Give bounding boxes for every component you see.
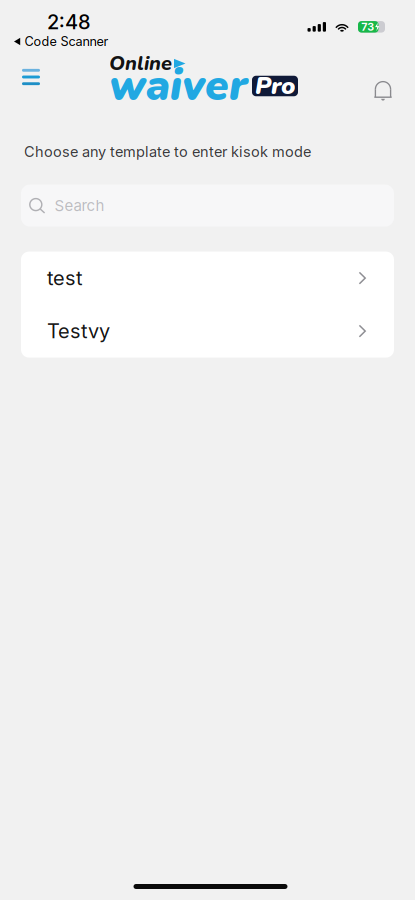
- staticText: test: [47, 266, 83, 290]
- staticText: Testvy: [47, 319, 110, 343]
- staticText: Choose any template to enter kisok mode: [24, 143, 311, 161]
- button[interactable]: test: [21, 252, 394, 305]
- staticText: waiver: [109, 57, 248, 115]
- button[interactable]: Notifications: [362, 70, 404, 112]
- staticText: 73: [361, 20, 374, 33]
- staticText: Online: [109, 50, 172, 77]
- staticText: 2:48: [47, 10, 91, 34]
- button[interactable]: Testvy: [21, 305, 394, 358]
- staticText: Code Scanner: [24, 34, 108, 49]
- staticText: Pro: [255, 70, 295, 102]
- button[interactable]: Menu: [10, 56, 52, 98]
- staticText: Search: [54, 196, 104, 215]
